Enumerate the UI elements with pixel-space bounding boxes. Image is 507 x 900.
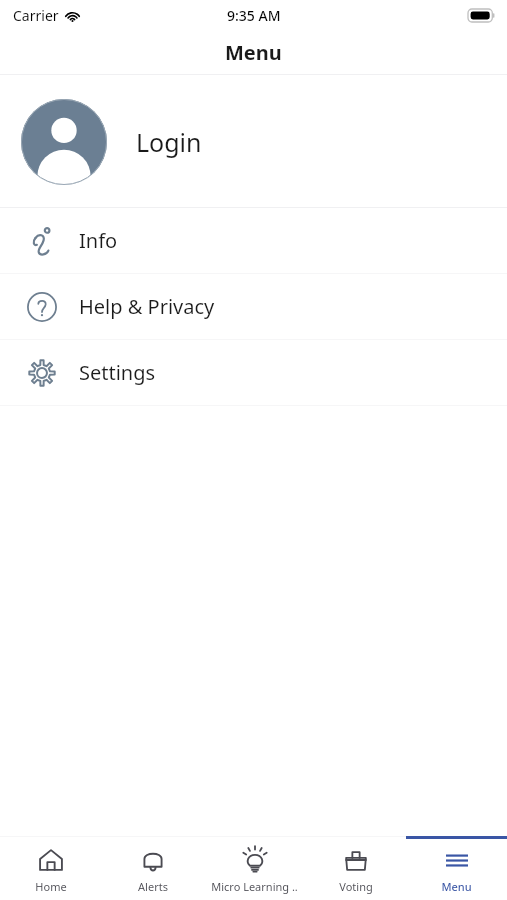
staticText: Settings (79, 359, 156, 386)
button[interactable]: Info (0, 208, 507, 273)
staticText: Help & Privacy (79, 293, 215, 320)
button[interactable]: Alerts (102, 836, 204, 900)
staticText: Menu (225, 39, 282, 66)
staticText: Carrier (13, 6, 59, 25)
button[interactable]: Micro Learning .. (204, 836, 305, 900)
button[interactable]: Settings (0, 340, 507, 405)
button[interactable]: Menu (406, 836, 507, 900)
staticText: Menu (441, 879, 472, 894)
staticText: Alerts (138, 879, 168, 894)
staticText: Login (136, 125, 202, 159)
staticText: Voting (339, 879, 373, 894)
button[interactable]: Help & Privacy (0, 274, 507, 339)
button[interactable]: Home (0, 836, 102, 900)
button[interactable]: Voting (305, 836, 406, 900)
staticText: Home (35, 879, 67, 894)
button[interactable]: Login (0, 76, 507, 207)
staticText: Micro Learning .. (211, 879, 298, 894)
staticText: Info (79, 227, 118, 254)
staticText: 9:35 AM (227, 6, 281, 25)
